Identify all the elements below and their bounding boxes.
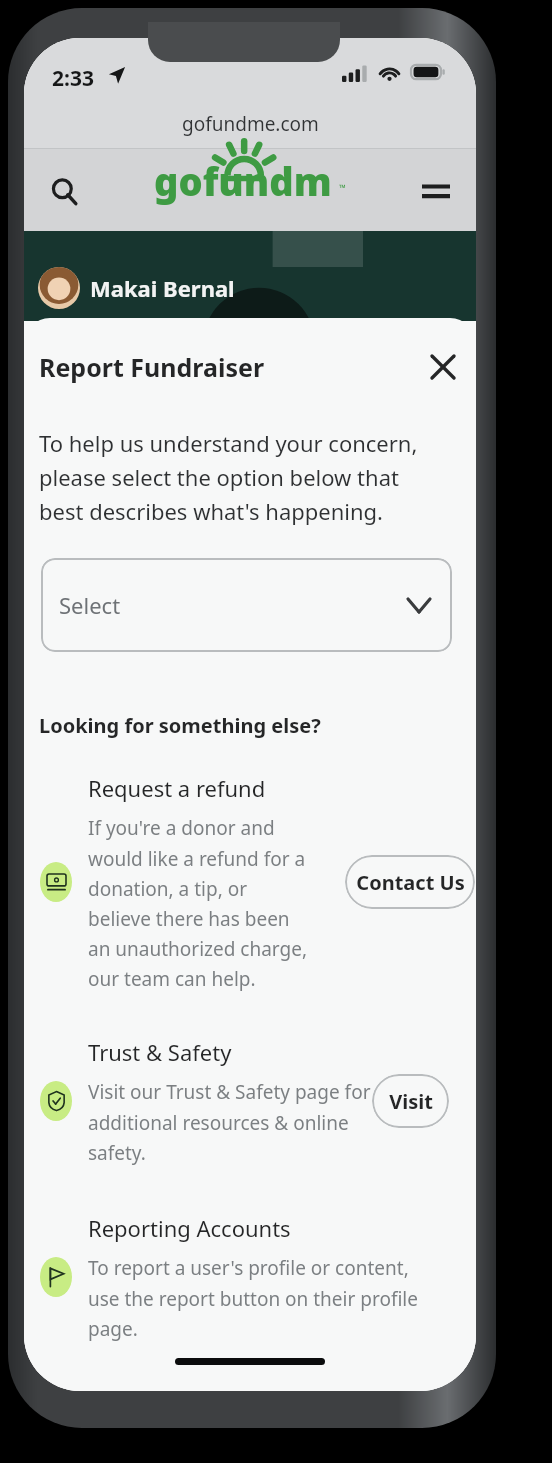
button[interactable]: gofundme <box>154 157 350 219</box>
staticText: If you're a donor and would like a refun… <box>88 815 310 991</box>
button[interactable]: Contact Us <box>345 855 475 909</box>
staticText: gofundme <box>154 155 350 217</box>
button[interactable]: Select <box>41 558 452 652</box>
button[interactable]: Search <box>38 165 90 217</box>
staticText: Request a refund <box>88 773 266 803</box>
staticText: Reporting Accounts <box>88 1213 291 1243</box>
staticText: ™ <box>339 181 346 193</box>
staticText: Makai Bernal <box>90 273 235 303</box>
staticText: To report a user's profile or content, u… <box>88 1255 444 1341</box>
staticText: Visit our Trust & Safety page for additi… <box>88 1079 384 1165</box>
staticText: 2:33 <box>52 64 94 93</box>
other: Trust and Safety <box>40 1081 72 1121</box>
other: Refund <box>40 862 72 902</box>
staticText: Report Fundraiser <box>39 350 265 384</box>
staticText: Contact Us <box>356 869 465 896</box>
staticText: Visit <box>389 1088 433 1115</box>
staticText: gofundme.com <box>182 111 319 137</box>
button[interactable]: Close <box>420 344 466 390</box>
staticText: Select <box>59 590 121 620</box>
button[interactable]: Visit <box>372 1074 449 1128</box>
button[interactable]: Menu <box>412 167 460 215</box>
staticText: Trust & Safety <box>88 1037 232 1067</box>
other: Reporting Accounts <box>40 1257 72 1297</box>
staticText: To help us understand your concern, plea… <box>39 428 440 526</box>
staticText: Looking for something else? <box>39 712 321 739</box>
